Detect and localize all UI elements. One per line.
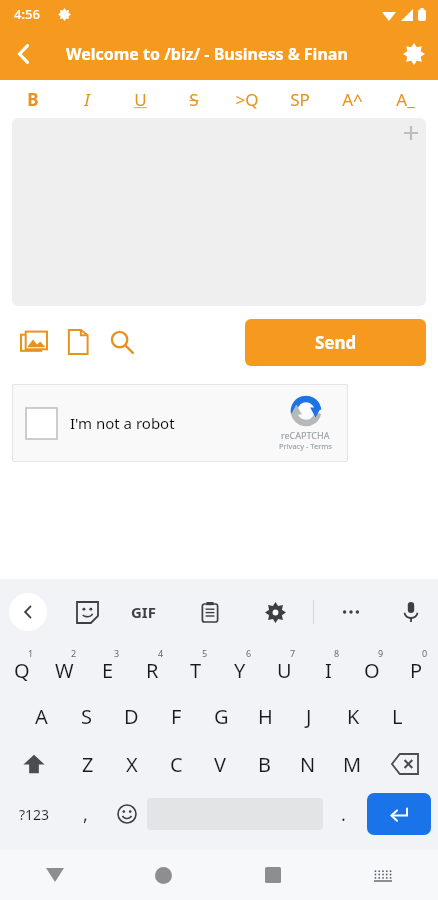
staticText: V [214,751,226,778]
button[interactable]: B [242,740,286,788]
button[interactable]: SP [273,80,326,118]
button[interactable]: . [323,788,364,840]
staticText: 9 [378,647,384,659]
staticText: A [35,703,48,730]
button[interactable]: Emoji [106,788,147,840]
button[interactable]: D [109,692,154,740]
staticText: B [27,88,39,111]
button[interactable]: Attach file [56,320,100,364]
button[interactable]: More options [332,593,370,631]
button[interactable]: A [19,692,64,740]
button[interactable]: N [286,740,330,788]
button[interactable]: M [330,740,374,788]
button[interactable]: J [287,692,331,740]
staticText: P [410,657,423,684]
button[interactable]: G [199,692,243,740]
staticText: 5 [202,647,208,659]
button[interactable]: Search [100,320,144,364]
button[interactable]: A_ [379,80,432,118]
staticText: I [84,88,90,111]
button[interactable]: Z [65,740,110,788]
staticText: Y [234,657,246,684]
button[interactable]: P [394,644,438,692]
staticText: Q [14,657,30,684]
button[interactable]: Switch keyboard [328,850,438,900]
staticText: B [258,751,271,778]
staticText: G [214,703,229,730]
staticText: F [171,703,182,730]
button[interactable]: Recent apps [218,850,328,900]
staticText: 1 [28,647,34,659]
staticText: I'm not a robot [70,413,175,433]
staticText: reCAPTCHA [281,429,330,441]
button[interactable]: F [154,692,199,740]
button[interactable]: , [65,788,106,840]
staticText: O [364,657,380,684]
button[interactable]: Enter [367,793,431,835]
button[interactable]: E [86,644,130,692]
button[interactable]: Voice input [392,593,430,631]
staticText: SP [290,88,310,111]
button[interactable]: S [64,692,109,740]
button[interactable]: Keyboard settings [256,593,294,631]
button[interactable]: I [306,644,350,692]
staticText: T [190,657,202,684]
staticText: W [55,657,74,684]
staticText: X [126,751,138,778]
staticText: N [300,751,316,778]
button[interactable]: Hide keyboard [0,850,109,900]
button[interactable]: ?123 [4,788,65,840]
staticText: L [392,703,403,730]
staticText: 4:56 [14,5,40,23]
staticText: . [341,802,346,827]
staticText: U [277,657,292,684]
button[interactable]: Clipboard [191,593,229,631]
button[interactable]: L [375,692,419,740]
button[interactable]: T [174,644,218,692]
button[interactable]: C [154,740,198,788]
staticText: 0 [422,647,428,659]
button[interactable]: I [60,80,114,118]
button[interactable]: Send [245,319,426,366]
staticText: Send [315,331,357,354]
staticText: 3 [114,647,120,659]
button[interactable]: Shift [2,740,65,788]
button[interactable]: O [350,644,394,692]
button[interactable]: R [130,644,174,692]
staticText: Welcome to /biz/ - Business & Finan [66,43,348,65]
button[interactable]: H [243,692,287,740]
button[interactable]: A^ [326,80,379,118]
staticText: D [124,703,139,730]
button[interactable]: Back [9,593,47,631]
button[interactable]: B [6,80,60,118]
button[interactable]: Back [0,30,48,78]
button[interactable]: I'm not a robot checkbox [26,408,57,439]
staticText: J [306,703,312,730]
button[interactable]: GIF [131,602,156,622]
staticText: E [102,657,114,684]
button[interactable]: Backspace [374,740,436,788]
button[interactable]: X [110,740,154,788]
button[interactable]: U [262,644,306,692]
staticText: 7 [290,647,296,659]
button[interactable]: V [198,740,242,788]
staticText: A_ [396,88,415,111]
button[interactable]: W [43,644,86,692]
button[interactable]: U [114,80,167,118]
button[interactable]: Settings [390,30,438,78]
button[interactable]: Stickers [68,593,106,631]
staticText: U [134,88,147,111]
button[interactable]: Attach image [12,320,56,364]
button[interactable]: >Q [220,80,273,118]
button[interactable]: Q [0,644,43,692]
button[interactable]: I'm not a robot checkbox [12,384,348,462]
button[interactable]: Y [218,644,262,692]
staticText: C [170,751,183,778]
button[interactable]: Home [109,850,218,900]
staticText: K [347,703,360,730]
staticText: R [146,657,159,684]
button[interactable]: K [331,692,375,740]
button[interactable]: S [167,80,220,118]
